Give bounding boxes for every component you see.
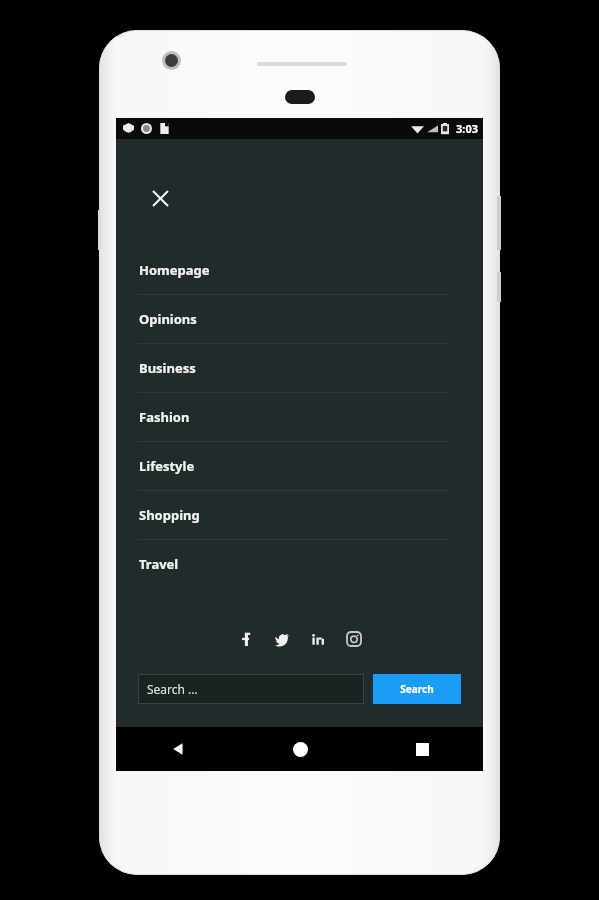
staticText: 3:03 xyxy=(456,121,478,136)
button[interactable]: Opinions xyxy=(116,295,483,343)
button[interactable]: Twitter xyxy=(267,624,297,654)
staticText: Shopping xyxy=(139,506,200,524)
staticText: Fashion xyxy=(139,408,190,426)
button[interactable]: Back xyxy=(116,727,239,771)
staticText: Lifestyle xyxy=(139,457,195,475)
button[interactable]: Home xyxy=(239,727,361,771)
staticText: Travel xyxy=(139,555,179,573)
staticText: Opinions xyxy=(139,310,197,328)
button[interactable]: Search xyxy=(373,674,461,704)
button[interactable]: Recent apps xyxy=(361,727,483,771)
button[interactable]: Close menu xyxy=(142,180,178,216)
button[interactable]: Search ... xyxy=(138,674,364,704)
button[interactable]: Travel xyxy=(116,540,483,588)
button[interactable]: Shopping xyxy=(116,491,483,539)
button[interactable]: Fashion xyxy=(116,393,483,441)
button[interactable]: Homepage xyxy=(116,246,483,294)
staticText: Business xyxy=(139,359,196,377)
button[interactable]: LinkedIn xyxy=(303,624,333,654)
button[interactable]: Business xyxy=(116,344,483,392)
button[interactable]: Facebook xyxy=(231,624,261,654)
staticText: Search ... xyxy=(147,681,198,697)
button[interactable]: Lifestyle xyxy=(116,442,483,490)
staticText: Homepage xyxy=(139,261,210,279)
staticText: Search xyxy=(400,682,434,696)
button[interactable]: Instagram xyxy=(339,624,369,654)
